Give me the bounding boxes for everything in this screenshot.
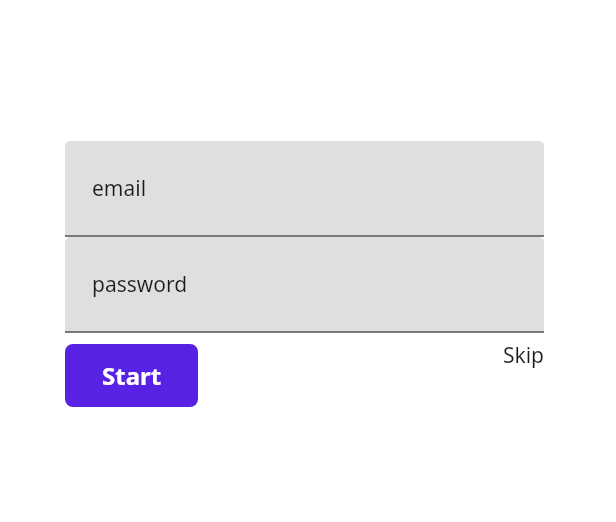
button[interactable]: email — [65, 141, 544, 237]
staticText: Skip — [502, 341, 544, 370]
staticText: Start — [102, 359, 162, 392]
button[interactable]: Skip — [502, 341, 544, 370]
button[interactable]: password — [65, 237, 544, 333]
button[interactable]: Start — [65, 344, 198, 407]
staticText: password — [92, 270, 188, 299]
staticText: email — [92, 174, 147, 203]
